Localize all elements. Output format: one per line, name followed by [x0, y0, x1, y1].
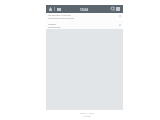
staticText: Updates	[48, 23, 56, 26]
staticText: Lorem ipsum dolor sit amet,	[48, 17, 75, 20]
other: Sync	[111, 7, 114, 10]
staticText: The Emulator is running	[48, 14, 71, 17]
other: Signal	[49, 7, 52, 11]
staticText: 13:34	[80, 8, 89, 12]
staticText: window	[83, 115, 91, 118]
staticText: Figure 1. Emul	[80, 112, 94, 115]
button[interactable]: Updates	[46, 22, 123, 31]
button[interactable]: The Emulator is running	[46, 13, 123, 22]
staticText: Lorem ipsum	[48, 26, 61, 29]
